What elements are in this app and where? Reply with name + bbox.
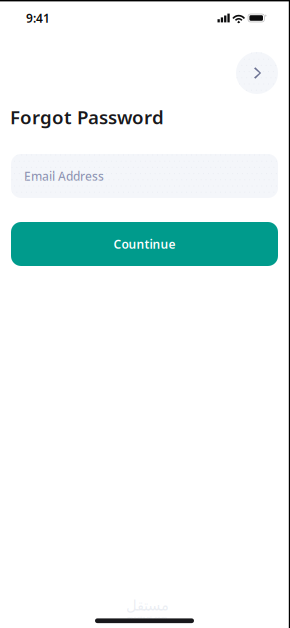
button[interactable]: Email Address — [11, 154, 278, 198]
staticText: Email Address — [24, 168, 104, 184]
staticText: Forgot Password — [10, 104, 164, 129]
button[interactable]: Next — [236, 52, 278, 94]
staticText: مستقل — [125, 597, 168, 614]
staticText: mostaql.com — [127, 614, 167, 623]
staticText: 9:41 — [26, 10, 50, 26]
button[interactable]: Countinue — [11, 222, 278, 266]
staticText: Countinue — [113, 236, 175, 252]
